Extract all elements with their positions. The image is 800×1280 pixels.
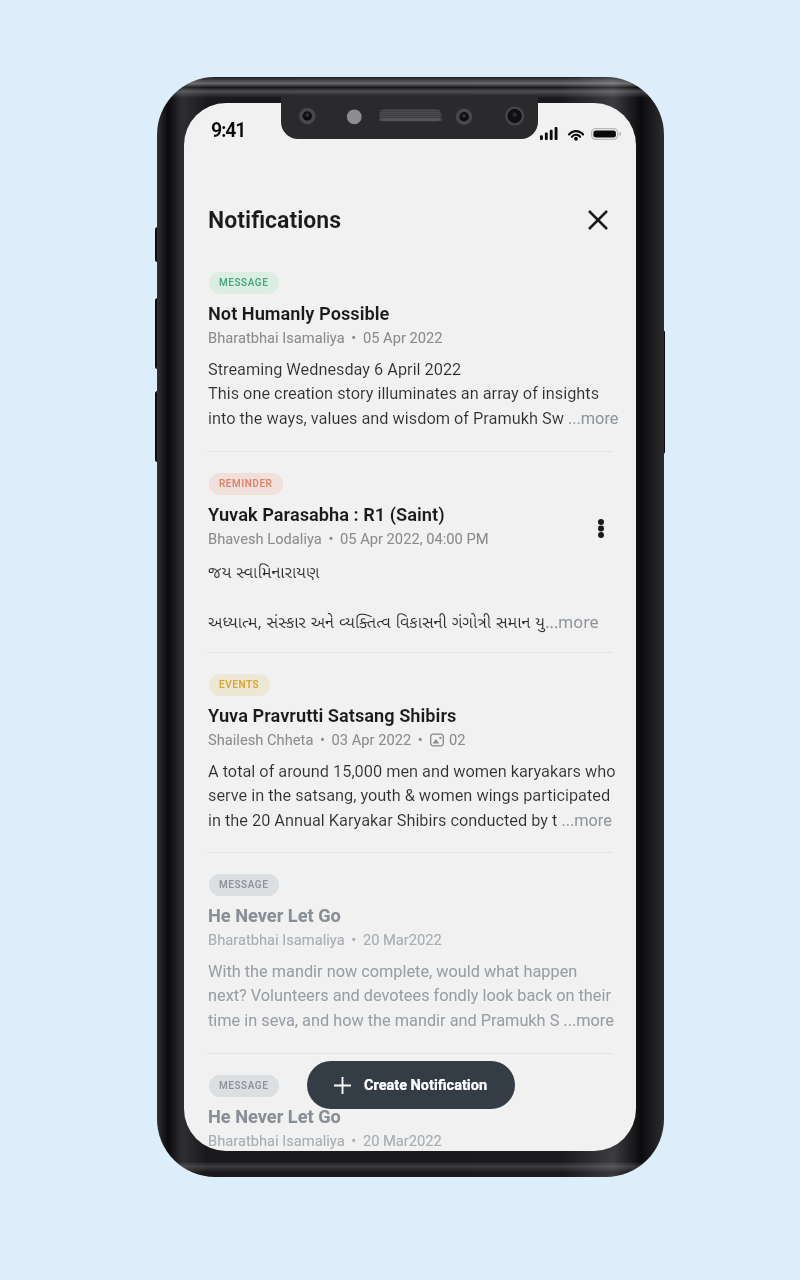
staticText: Yuva Pravrutti Satsang Shibirs: [208, 705, 457, 726]
button[interactable]: Create Notification: [307, 1061, 515, 1109]
staticText: Shailesh Chheta • 03 Apr 2022 •: [208, 731, 430, 748]
staticText: Yuvak Parasabha : R1 (Saint): [208, 504, 445, 525]
button[interactable]: MESSAGE: [184, 852, 636, 1052]
button[interactable]: Close: [575, 198, 621, 242]
staticText: MESSAGE: [219, 277, 269, 289]
staticText: Bhavesh Lodaliya • 05 Apr 2022, 04:00 PM: [208, 530, 489, 547]
staticText: EVENTS: [219, 679, 260, 691]
staticText: Not Humanly Possible: [208, 303, 390, 324]
staticText: A total of around 15,000 men and women k…: [208, 762, 616, 830]
staticText: Create Notification: [364, 1077, 488, 1094]
staticText: With the mandir now complete, would what…: [208, 962, 614, 1030]
staticText: He Never Let Go: [208, 905, 341, 926]
staticText: Bharatbhai Isamaliya • 20 Mar2022: [208, 931, 442, 948]
staticText: REMINDER: [219, 478, 273, 490]
button[interactable]: REMINDER: [184, 451, 636, 651]
staticText: MESSAGE: [219, 879, 269, 891]
staticText: Notifications: [208, 207, 342, 234]
staticText: He Never Let Go: [208, 1106, 341, 1127]
staticText: MESSAGE: [219, 1080, 269, 1092]
button[interactable]: EVENTS: [184, 652, 636, 852]
staticText: 9:41: [211, 119, 246, 142]
button[interactable]: MESSAGE: [184, 1053, 636, 1151]
staticText: Bharatbhai Isamaliya • 20 Mar2022: [208, 1132, 442, 1149]
staticText: 02: [449, 731, 466, 748]
button[interactable]: MESSAGE: [184, 250, 636, 450]
staticText: Streaming Wednesday 6 April 2022 This on…: [208, 360, 619, 428]
button[interactable]: More options: [583, 510, 619, 546]
staticText: જય સ્વામિનારાયણ અધ્યાત્મ, સંસ્કાર અને વ્…: [208, 561, 599, 633]
staticText: Bharatbhai Isamaliya • 05 Apr 2022: [208, 329, 443, 346]
